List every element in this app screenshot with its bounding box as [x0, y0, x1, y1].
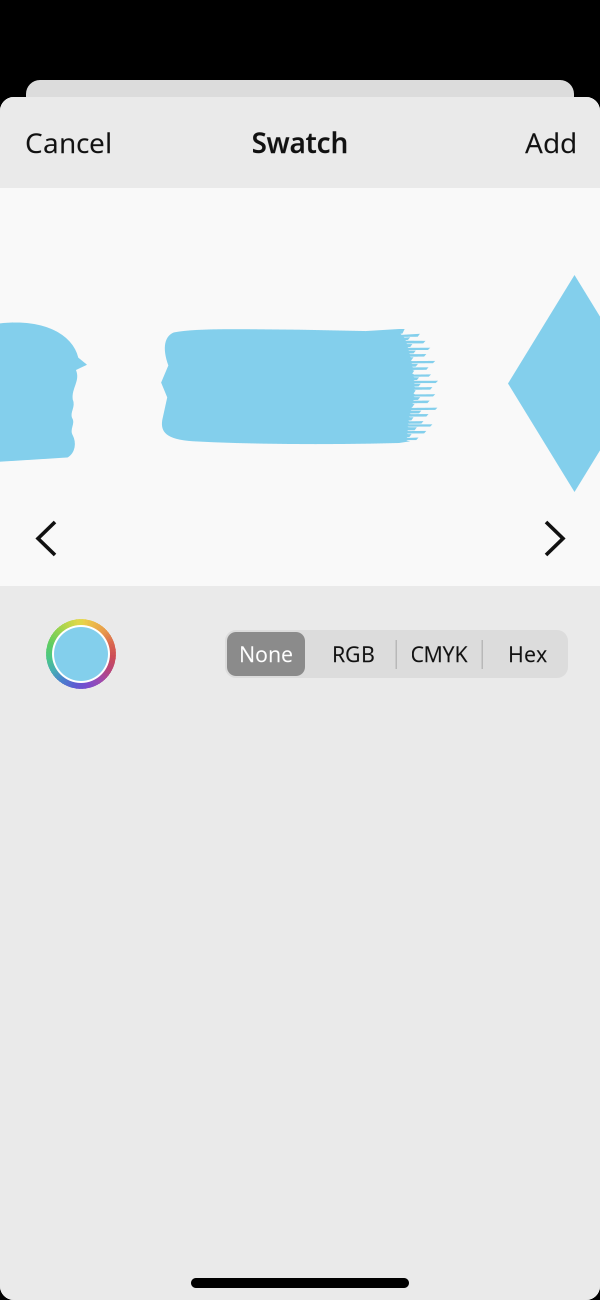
staticText: Cancel: [25, 124, 112, 161]
staticText: Add: [525, 124, 577, 161]
button[interactable]: CMYK: [396, 632, 482, 676]
button[interactable]: Add: [507, 97, 600, 188]
button[interactable]: Previous swatch: [16, 500, 77, 577]
staticText: Hex: [508, 640, 547, 668]
staticText: None: [239, 640, 293, 668]
button[interactable]: Colour wheel: [46, 619, 116, 689]
button[interactable]: Cancel: [0, 97, 130, 188]
button[interactable]: Next swatch: [524, 500, 585, 577]
staticText: Swatch: [251, 124, 348, 161]
button[interactable]: None: [227, 632, 305, 676]
button[interactable]: RGB: [308, 632, 399, 676]
button[interactable]: Hex: [485, 632, 570, 676]
staticText: CMYK: [410, 640, 467, 668]
staticText: RGB: [332, 640, 375, 668]
